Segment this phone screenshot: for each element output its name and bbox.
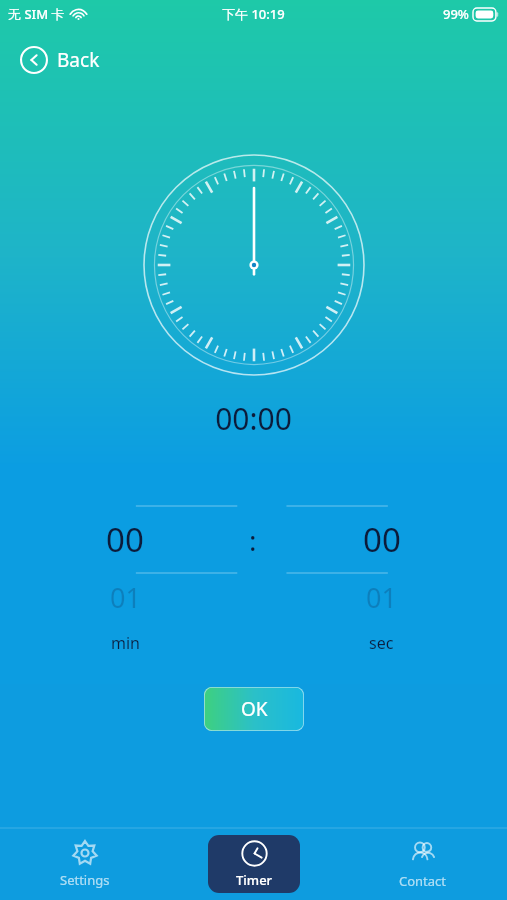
staticText: Settings [60, 871, 110, 889]
button[interactable]: OK [204, 687, 304, 731]
staticText: : [249, 521, 257, 559]
staticText: 01 [366, 579, 397, 616]
staticText: 无 SIM 卡 [8, 5, 65, 23]
button[interactable]: Contact [338, 828, 507, 900]
button[interactable]: Timer [208, 835, 300, 893]
staticText: Back [57, 47, 100, 73]
staticText: 00:00 [0, 398, 507, 439]
staticText: min [111, 632, 140, 654]
staticText: sec [369, 632, 394, 654]
button[interactable]: 00 [268, 506, 507, 573]
staticText: 00 [363, 517, 401, 562]
staticText: Timer [236, 871, 273, 889]
staticText: 下午 10:19 [222, 5, 285, 23]
staticText: 01 [110, 579, 141, 616]
staticText: 99% [443, 5, 469, 23]
staticText: 00 [106, 517, 144, 562]
staticText: Contact [399, 872, 447, 890]
button[interactable]: Back [16, 42, 104, 78]
staticText: OK [241, 696, 268, 722]
button[interactable]: Settings [0, 828, 169, 900]
button[interactable]: 00 [0, 506, 238, 573]
